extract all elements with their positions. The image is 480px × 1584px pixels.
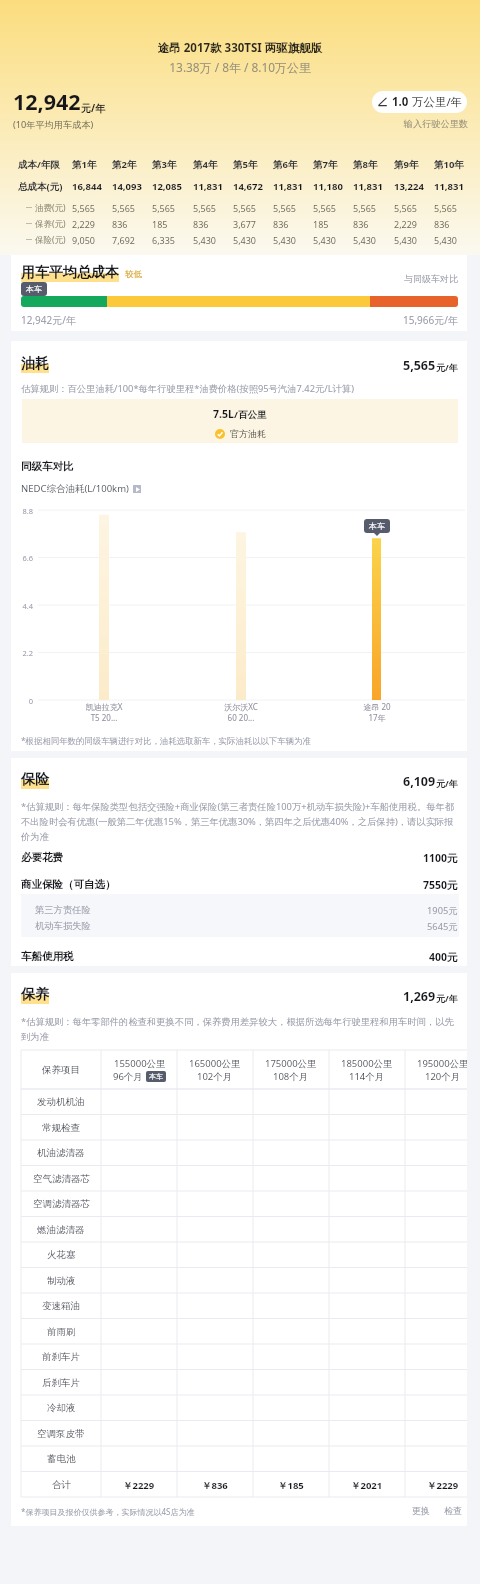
staticText: 油耗 xyxy=(21,355,49,373)
staticText: 16,844 xyxy=(72,180,102,193)
staticText: 14,672 xyxy=(233,180,263,193)
staticText: 途昂 2017款 330TSI 两驱旗舰版 xyxy=(0,40,480,56)
staticText: 11,180 xyxy=(313,180,343,193)
staticText: 官方油耗 xyxy=(230,428,266,439)
staticText: 元/年 xyxy=(436,777,458,789)
staticText: 114个月 xyxy=(349,1070,385,1083)
staticText: 后刹车片 xyxy=(42,1377,80,1389)
staticText: 发动机机油 xyxy=(37,1096,85,1108)
staticText: 第10年 xyxy=(434,158,464,171)
staticText: 96个月 xyxy=(113,1070,143,1083)
staticText: (10年平均用车成本) xyxy=(13,118,94,131)
staticText: 燃油滤清器 xyxy=(37,1224,85,1236)
staticText: ￥2229 xyxy=(427,1479,459,1492)
staticText: 第9年 xyxy=(394,158,419,171)
button[interactable]: 商业保险（可自选） xyxy=(11,878,467,892)
button[interactable]: 车船使用税 xyxy=(11,950,467,964)
button[interactable]: 更换 xyxy=(412,1505,430,1516)
button[interactable]: 检查 xyxy=(444,1505,462,1516)
staticText: 5,565 xyxy=(233,202,257,214)
staticText: 165000公里 xyxy=(189,1057,241,1070)
staticText: 凯迪拉克X xyxy=(71,701,137,712)
staticText: *估算规则：每年保险类型包括交强险+商业保险(第三者责任险100万+机动车损失险… xyxy=(21,800,459,842)
staticText: 车船使用税 xyxy=(21,950,74,963)
staticText: 第7年 xyxy=(313,158,338,171)
staticText: 5,430 xyxy=(353,234,377,246)
staticText: 185 xyxy=(313,218,329,230)
staticText: 6,109 xyxy=(403,773,436,790)
staticText: 3,677 xyxy=(233,218,257,230)
staticText: 变速箱油 xyxy=(42,1300,80,1312)
button[interactable]: 必要花费 xyxy=(11,851,467,865)
staticText: 1905元 xyxy=(427,904,458,917)
staticText: 5645元 xyxy=(427,920,458,933)
staticText: 5,565 xyxy=(313,202,337,214)
staticText: 机动车损失险 xyxy=(35,920,91,932)
staticText: 空气滤清器芯 xyxy=(33,1173,90,1185)
staticText: 155000公里 xyxy=(114,1057,166,1070)
staticText: 本车 xyxy=(26,284,42,294)
staticText: 常规检查 xyxy=(42,1122,80,1134)
staticText: 途昂 20 xyxy=(344,701,410,712)
staticText: 元/年 xyxy=(81,101,106,115)
staticText: NEDC综合油耗(L/100km) xyxy=(21,482,129,495)
staticText: 本车 xyxy=(369,521,385,531)
staticText: 60 20... xyxy=(208,712,274,723)
staticText: 9,050 xyxy=(72,234,96,246)
staticText: 沃尔沃XC xyxy=(208,701,274,712)
staticText: 与同级车对比 xyxy=(404,273,458,284)
staticText: 元/年 xyxy=(436,992,458,1004)
staticText: 5,430 xyxy=(394,234,418,246)
staticText: 1.0 xyxy=(392,94,409,110)
button[interactable]: 1.0 xyxy=(372,91,467,113)
staticText: 制动液 xyxy=(47,1275,76,1287)
staticText: 11,831 xyxy=(434,180,464,193)
staticText: 5,565 xyxy=(152,202,176,214)
staticText: 空调滤清器芯 xyxy=(33,1198,90,1210)
button[interactable]: Play xyxy=(133,485,141,493)
staticText: /百公里 xyxy=(234,408,267,421)
staticText: 175000公里 xyxy=(265,1057,317,1070)
staticText: 保险 xyxy=(21,771,49,789)
staticText: 8.8 xyxy=(11,506,33,516)
staticText: 102个月 xyxy=(197,1070,233,1083)
staticText: 15,966元/年 xyxy=(403,313,458,327)
staticText: 0 xyxy=(11,696,33,706)
staticText: 第三方责任险 xyxy=(35,904,91,916)
staticText: 保养项目 xyxy=(42,1064,80,1076)
staticText: 保险(元) xyxy=(35,234,66,246)
staticText: 5,565 xyxy=(193,202,217,214)
staticText: 第8年 xyxy=(353,158,378,171)
staticText: 5,565 xyxy=(434,202,458,214)
staticText: 用车平均总成本 xyxy=(21,264,119,282)
staticText: 13,224 xyxy=(394,180,424,193)
staticText: 11,831 xyxy=(273,180,303,193)
staticText: 5,565 xyxy=(403,357,436,374)
staticText: 商业保险（可自选） xyxy=(21,878,116,891)
staticText: 12,942元/年 xyxy=(21,313,76,327)
staticText: 总成本(元) xyxy=(18,180,63,193)
staticText: *根据相同年数的同级车辆进行对比，油耗选取新车，实际油耗以以下车辆为准 xyxy=(21,735,311,746)
staticText: 108个月 xyxy=(273,1070,309,1083)
staticText: 836 xyxy=(193,218,209,230)
staticText: ￥2229 xyxy=(123,1479,155,1492)
staticText: 12,085 xyxy=(152,180,182,193)
staticText: 5,565 xyxy=(353,202,377,214)
staticText: 较低 xyxy=(125,269,142,280)
staticText: 2.2 xyxy=(11,648,33,658)
staticText: 6,335 xyxy=(152,234,176,246)
staticText: 同级车对比 xyxy=(21,460,74,473)
staticText: 第6年 xyxy=(273,158,298,171)
staticText: 保养 xyxy=(21,986,49,1004)
staticText: 冷却液 xyxy=(47,1402,76,1414)
staticText: 5,430 xyxy=(313,234,337,246)
staticText: 2,229 xyxy=(72,218,96,230)
staticText: 5,430 xyxy=(434,234,458,246)
staticText: 前刹车片 xyxy=(42,1351,80,1363)
staticText: ￥836 xyxy=(202,1479,228,1492)
staticText: 836 xyxy=(273,218,289,230)
staticText: 7550元 xyxy=(423,878,458,892)
staticText: 7.5L xyxy=(213,407,234,421)
staticText: 保养(元) xyxy=(35,218,66,230)
staticText: 油费(元) xyxy=(35,202,66,214)
